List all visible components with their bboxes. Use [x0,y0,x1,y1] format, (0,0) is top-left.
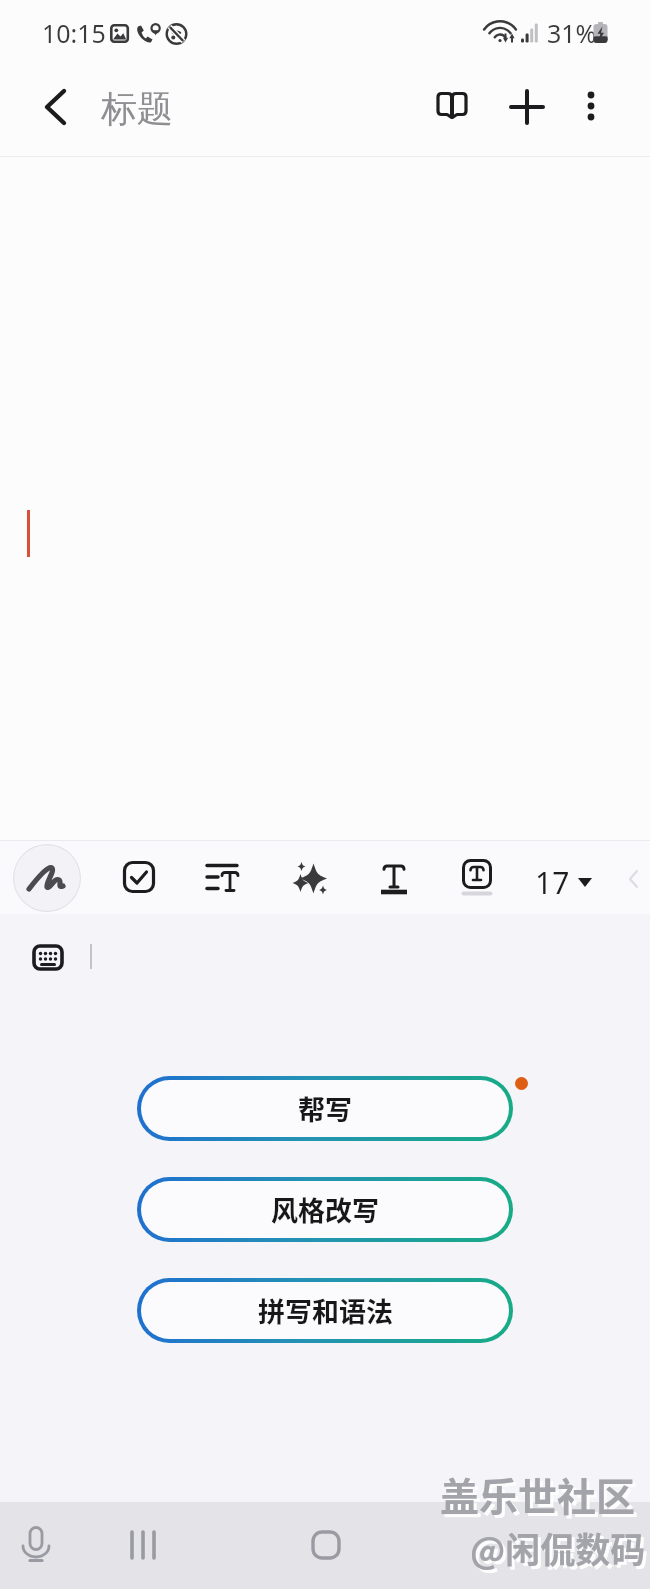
button[interactable]: 帮写 [141,1080,509,1137]
staticText: 风格改写 [271,1190,379,1229]
button[interactable]: Checklist [111,849,167,905]
button[interactable]: Home [298,1517,354,1573]
staticText: 盖乐世社区 [443,1469,639,1525]
staticText: 10:15 [42,16,106,50]
staticText: 帮写 [298,1089,352,1128]
button[interactable]: More options [563,78,619,134]
button[interactable]: 风格改写 [141,1181,509,1238]
staticText: 31% [547,16,597,50]
staticText: @闲侃数码 [473,1525,649,1576]
staticText: @闲侃数码 [470,1522,646,1573]
button[interactable]: 拼写和语法 [141,1282,509,1339]
button[interactable]: Voice input [8,1517,64,1573]
staticText: 标题 [101,86,173,131]
button[interactable]: Text style [366,849,422,905]
button[interactable]: Text box [450,849,506,905]
button[interactable]: Recent apps [116,1517,172,1573]
button[interactable]: Back [28,79,84,135]
button[interactable]: Paragraph style [194,849,250,905]
button[interactable]: Reading mode [424,78,480,134]
button[interactable]: Keyboard [21,930,75,984]
staticText: 盖乐世社区 [440,1466,636,1522]
button[interactable]: 17 [535,862,592,903]
staticText: 17 [535,862,570,903]
button[interactable]: Handwriting [13,844,81,912]
staticText: 拼写和语法 [258,1291,393,1330]
button[interactable]: Add note [499,79,555,135]
button[interactable]: Writing assist [281,849,337,905]
